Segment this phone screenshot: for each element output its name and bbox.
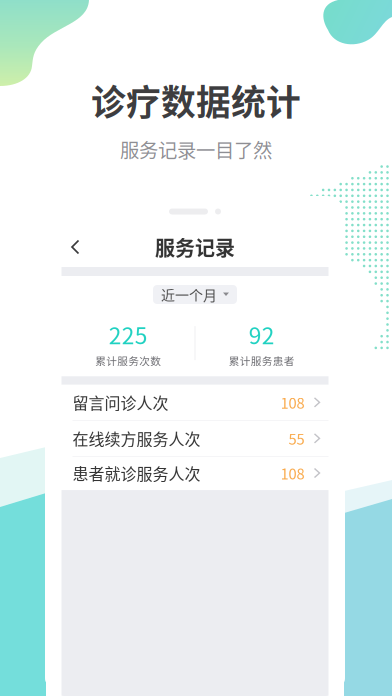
- staticText: 在线续方服务人次: [72, 427, 200, 450]
- staticText: 服务记录: [155, 232, 235, 261]
- staticText: 108: [280, 392, 304, 413]
- staticText: 患者就诊服务人次: [72, 461, 200, 485]
- staticText: 服务记录一目了然: [120, 135, 272, 163]
- button[interactable]: 留言问诊人次: [61, 385, 328, 421]
- staticText: 累计服务次数: [95, 353, 161, 368]
- staticText: 92: [249, 318, 275, 351]
- staticText: 225: [109, 318, 148, 351]
- button[interactable]: Back: [61, 233, 89, 261]
- button[interactable]: 近一个月: [153, 285, 237, 304]
- button[interactable]: 在线续方服务人次: [61, 421, 328, 457]
- staticText: 诊疗数据统计: [91, 75, 301, 125]
- staticText: 近一个月: [161, 284, 217, 305]
- staticText: 55: [288, 428, 304, 449]
- button[interactable]: 患者就诊服务人次: [61, 457, 328, 490]
- staticText: 108: [280, 462, 304, 484]
- staticText: 累计服务患者: [229, 353, 295, 368]
- staticText: 留言问诊人次: [72, 391, 168, 414]
